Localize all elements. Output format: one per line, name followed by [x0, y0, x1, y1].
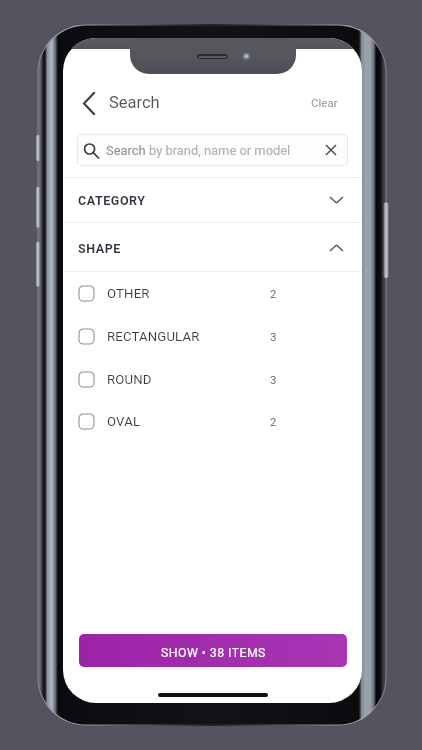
button[interactable]: SHOW • 38 ITEMS: [79, 634, 347, 667]
staticText: RECTANGULAR: [107, 329, 200, 344]
staticText: Search: [109, 93, 160, 112]
staticText: by brand, name or model: [149, 143, 291, 158]
staticText: CATEGORY: [78, 193, 146, 208]
staticText: SHOW • 38 ITEMS: [161, 646, 266, 660]
staticText: 3: [270, 330, 277, 343]
button[interactable]: RECTANGULAR: [63, 315, 362, 357]
button[interactable]: OTHER: [63, 272, 362, 314]
staticText: 3: [270, 373, 277, 386]
button[interactable]: ROUND: [63, 358, 362, 400]
button[interactable]: Clear: [303, 90, 346, 115]
staticText: 2: [270, 415, 277, 428]
button[interactable]: Back: [71, 86, 105, 120]
staticText: OVAL: [107, 414, 141, 429]
button[interactable]: Clear search: [320, 139, 342, 161]
staticText: OTHER: [107, 286, 150, 301]
staticText: SHAPE: [78, 241, 121, 256]
staticText: Search: [106, 143, 149, 158]
button[interactable]: CATEGORY: [63, 178, 362, 222]
button[interactable]: Search: [77, 134, 348, 166]
staticText: ROUND: [107, 372, 152, 387]
button[interactable]: SHAPE: [63, 226, 362, 270]
button[interactable]: OVAL: [63, 400, 362, 442]
staticText: 2: [270, 287, 277, 300]
staticText: Clear: [311, 96, 338, 109]
